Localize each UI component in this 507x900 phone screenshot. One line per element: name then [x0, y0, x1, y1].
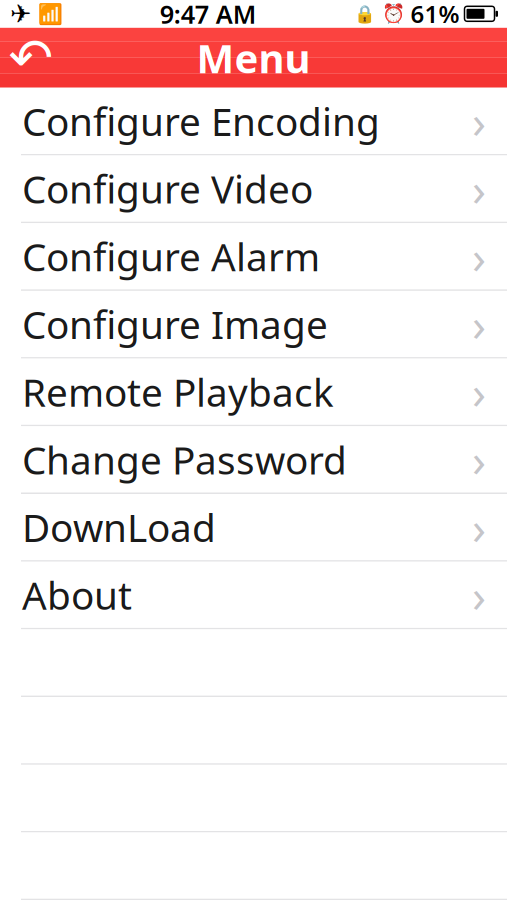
- button[interactable]: Remote Playback: [0, 359, 507, 426]
- staticText: Menu: [196, 31, 310, 84]
- staticText: 9:47 AM: [160, 0, 257, 31]
- button[interactable]: About: [0, 562, 507, 629]
- staticText: 61%: [410, 0, 459, 30]
- staticText: ›: [472, 294, 486, 354]
- button[interactable]: DownLoad: [0, 494, 507, 562]
- button[interactable]: Back: [0, 28, 62, 88]
- button[interactable]: Configure Image: [0, 291, 507, 359]
- button[interactable]: Change Password: [0, 426, 507, 494]
- staticText: Configure Encoding: [22, 95, 380, 146]
- staticText: Change Password: [22, 434, 347, 485]
- staticText: 📶: [38, 2, 63, 25]
- staticText: ›: [472, 226, 486, 286]
- staticText: DownLoad: [22, 501, 216, 553]
- staticText: ⏰: [381, 3, 404, 24]
- staticText: Configure Alarm: [22, 231, 320, 282]
- staticText: ›: [472, 497, 486, 557]
- staticText: Configure Image: [22, 298, 328, 350]
- staticText: About: [22, 569, 132, 620]
- button[interactable]: Configure Video: [0, 155, 507, 223]
- staticText: ›: [472, 429, 486, 489]
- staticText: ›: [472, 362, 486, 422]
- staticText: ↶: [8, 27, 53, 88]
- button[interactable]: Configure Alarm: [0, 223, 507, 291]
- button[interactable]: Configure Encoding: [0, 88, 507, 155]
- staticText: Remote Playback: [22, 366, 334, 417]
- staticText: ›: [472, 91, 486, 151]
- staticText: ›: [472, 158, 486, 219]
- staticText: Configure Video: [22, 163, 313, 214]
- staticText: ›: [472, 565, 486, 625]
- staticText: 🔒: [353, 4, 375, 24]
- staticText: ✈: [10, 0, 31, 28]
